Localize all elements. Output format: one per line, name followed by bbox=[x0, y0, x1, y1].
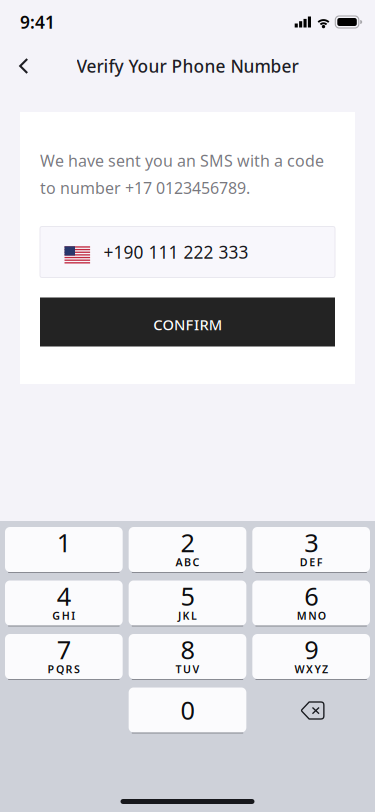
button[interactable]: 1 bbox=[5, 527, 123, 573]
staticText: 1 bbox=[57, 526, 71, 559]
button[interactable]: CONFIRM bbox=[40, 297, 335, 346]
staticText: 3 bbox=[304, 526, 318, 559]
staticText: MNO bbox=[297, 608, 326, 623]
button[interactable]: 0 bbox=[129, 687, 246, 733]
button[interactable]: 4 bbox=[5, 580, 123, 626]
staticText: 7 bbox=[57, 633, 71, 666]
staticText: 4 bbox=[57, 579, 71, 613]
button[interactable]: 9 bbox=[252, 634, 370, 680]
button[interactable]: 2 bbox=[129, 527, 246, 573]
staticText: +190 111 222 333 bbox=[104, 240, 249, 263]
button[interactable]: 7 bbox=[5, 634, 123, 680]
button[interactable]: 6 bbox=[252, 580, 370, 626]
staticText: 9 bbox=[304, 633, 318, 666]
staticText: JKL bbox=[178, 608, 197, 623]
button[interactable]: Back bbox=[0, 45, 44, 87]
staticText: ABC bbox=[175, 555, 199, 569]
staticText: 5 bbox=[180, 579, 194, 613]
staticText: 0 bbox=[180, 693, 194, 727]
staticText: CONFIRM bbox=[153, 315, 222, 334]
button[interactable]: 8 bbox=[129, 634, 246, 680]
staticText: TUV bbox=[175, 662, 199, 676]
button[interactable]: 5 bbox=[129, 580, 246, 626]
staticText: 9:41 bbox=[20, 10, 55, 33]
staticText: 8 bbox=[180, 633, 194, 666]
staticText: GHI bbox=[52, 608, 75, 623]
staticText: PQRS bbox=[48, 662, 80, 676]
staticText: 2 bbox=[180, 526, 194, 559]
button[interactable]: 3 bbox=[252, 527, 370, 573]
staticText: Verify Your Phone Number bbox=[76, 54, 298, 77]
staticText: 6 bbox=[304, 579, 318, 613]
button[interactable]: Delete bbox=[252, 687, 370, 733]
staticText: DEF bbox=[300, 555, 323, 569]
staticText: We have sent you an SMS with a code to n… bbox=[40, 150, 324, 198]
staticText: WXYZ bbox=[294, 662, 328, 676]
button[interactable]: +190 111 222 333 bbox=[40, 226, 335, 277]
